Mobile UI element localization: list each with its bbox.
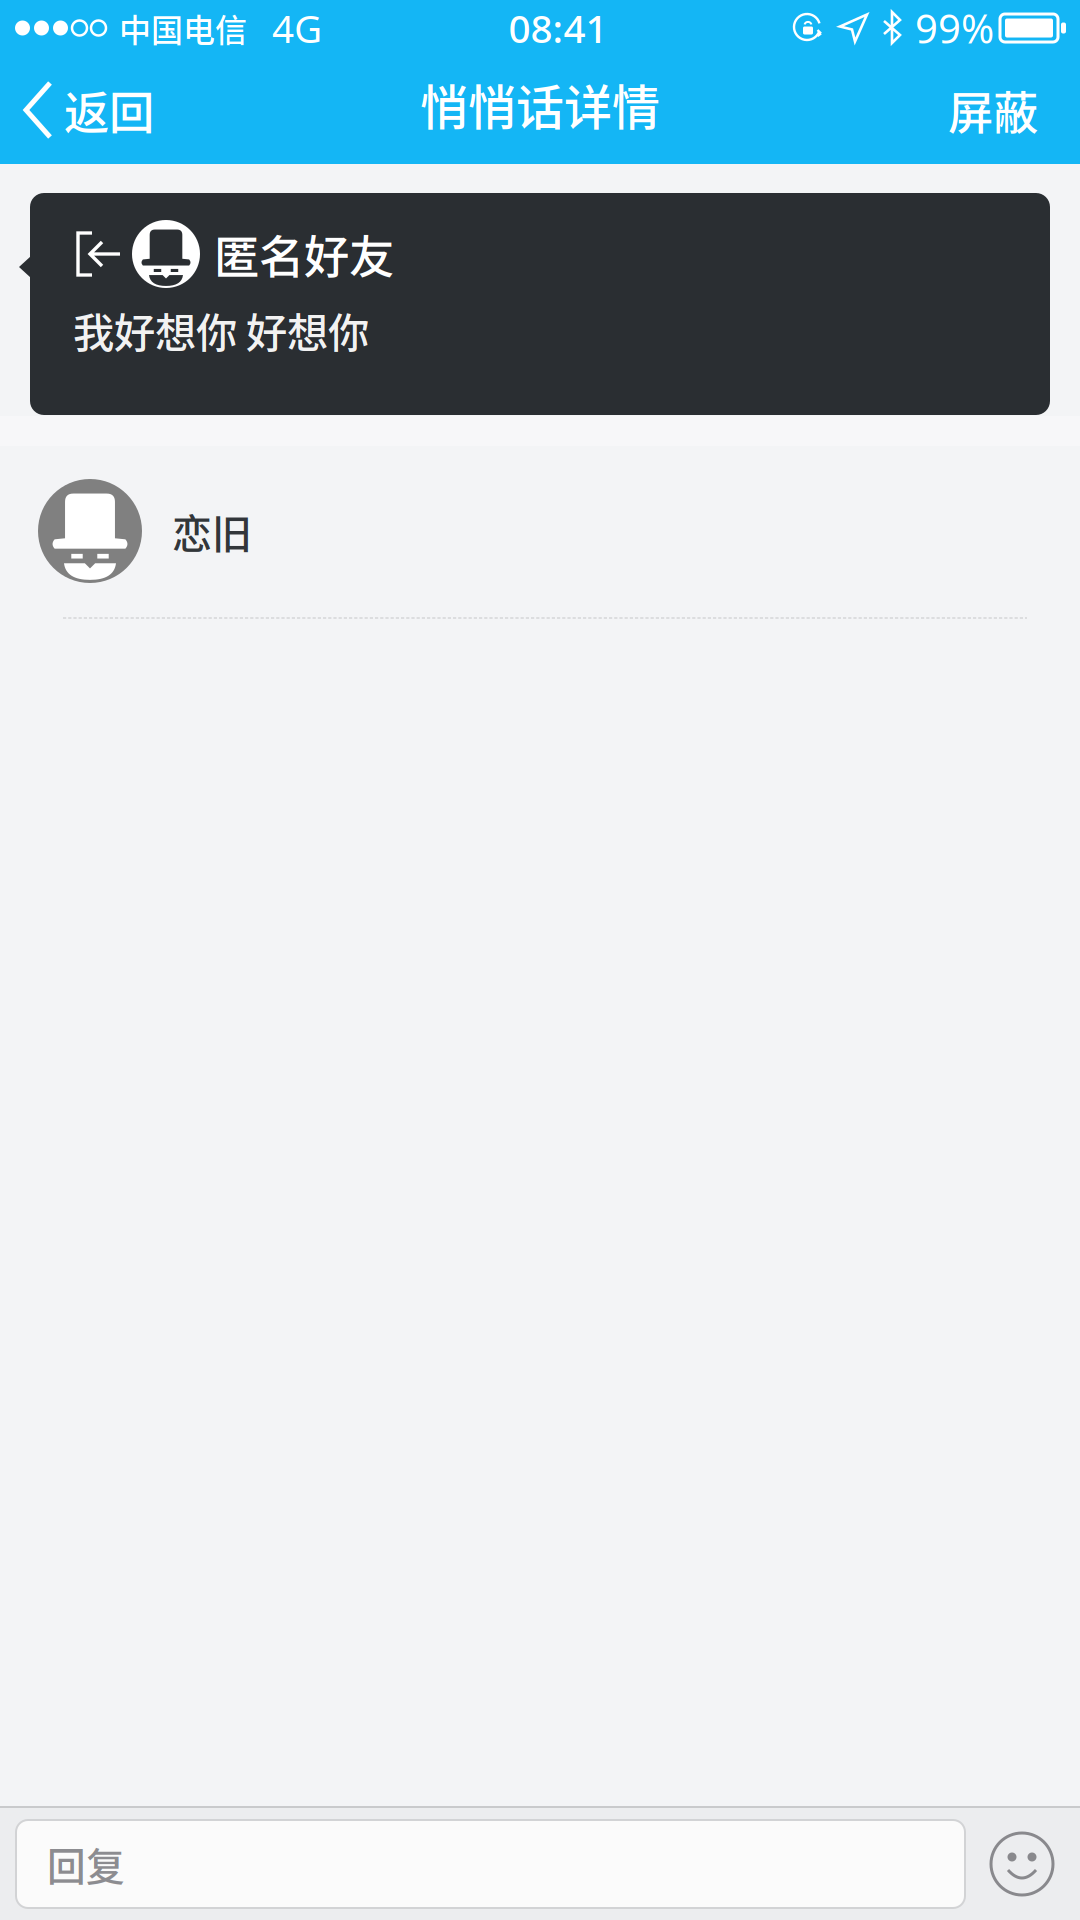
staticText: 08:41	[508, 2, 607, 54]
button[interactable]: 恋旧	[0, 479, 1080, 619]
button[interactable]: 返回	[0, 56, 170, 164]
button[interactable]: Emoji	[974, 1832, 1080, 1896]
staticText: 我好想你 好想你	[73, 300, 369, 360]
staticText: 屏蔽	[948, 77, 1038, 143]
staticText: 中国电信	[119, 5, 247, 51]
button[interactable]: 屏蔽	[928, 56, 1080, 164]
staticText: 匿名好友	[214, 221, 394, 287]
staticText: 悄悄话详情	[420, 69, 660, 139]
staticText: 回复	[47, 1836, 125, 1892]
button[interactable]: 匿名好友	[0, 193, 1080, 415]
staticText: 恋旧	[172, 502, 252, 560]
staticText: 返回	[64, 77, 154, 143]
staticText: 99%	[915, 1, 994, 54]
staticText: 4G	[272, 2, 322, 54]
button[interactable]: 回复	[0, 1820, 965, 1908]
